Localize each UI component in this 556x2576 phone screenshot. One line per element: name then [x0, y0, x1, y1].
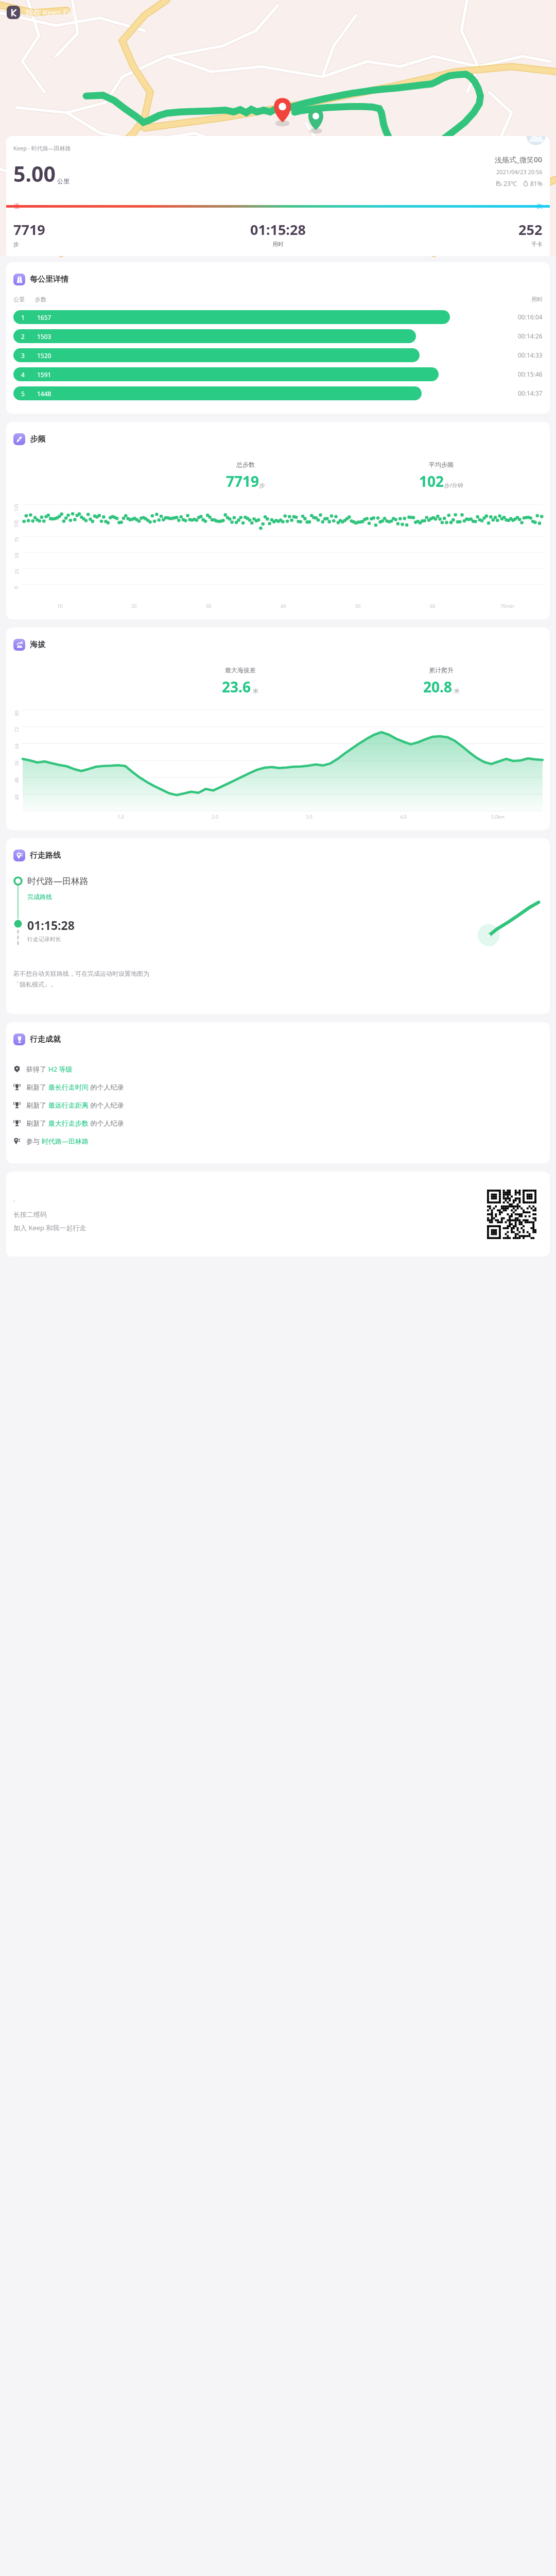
staticText: 用时 — [272, 241, 284, 248]
staticText: 1448 — [37, 389, 51, 398]
staticText: 累计爬升 — [429, 666, 454, 674]
staticText: 23.6 — [222, 677, 251, 697]
staticText: 3 — [21, 351, 25, 360]
staticText: 60 — [430, 603, 436, 609]
staticText: 最大海拔差 — [225, 666, 256, 674]
staticText: 5 — [21, 389, 25, 398]
staticText: 72 — [13, 727, 19, 732]
staticText: 4.0 — [400, 814, 407, 820]
staticText: 1520 — [37, 351, 51, 360]
staticText: 公里 — [57, 177, 69, 185]
staticText: 20 — [131, 603, 137, 609]
staticText: 70min — [500, 603, 514, 609]
staticText: 最远行走距离 — [48, 1101, 89, 1109]
button[interactable]: 步频 — [6, 422, 550, 619]
staticText: 浅殇式_微笑00 — [495, 155, 543, 164]
staticText: 4 — [21, 370, 25, 379]
staticText: 1503 — [37, 332, 51, 341]
staticText: 56 — [13, 760, 19, 766]
other: QR code — [487, 1190, 536, 1239]
staticText: 00:14:37 — [518, 389, 543, 397]
button[interactable]: 行走成就 — [6, 1022, 550, 1163]
staticText: 的个人纪录 — [89, 1082, 124, 1092]
staticText: 01:15:28 — [250, 220, 306, 239]
staticText: 行走记录时长 — [27, 936, 61, 943]
button[interactable]: 刷新了 — [13, 1078, 543, 1096]
button[interactable]: 4 — [13, 366, 543, 382]
staticText: 25 — [13, 569, 19, 574]
button[interactable]: - — [6, 1172, 550, 1257]
staticText: 2 — [21, 332, 25, 341]
staticText: H2 等级 — [48, 1064, 73, 1074]
staticText: 刷新了 — [26, 1100, 48, 1110]
staticText: 获得了 — [26, 1064, 48, 1074]
other: Keep logo — [7, 6, 20, 19]
staticText: 01:15:28 — [27, 917, 75, 933]
staticText: Keep · 时代路—田林路 — [13, 144, 71, 152]
staticText: 75 — [13, 537, 19, 542]
staticText: 刷新了 — [26, 1118, 48, 1128]
staticText: 我在 Keep 行走 — [25, 7, 79, 18]
button[interactable]: Keep logo — [7, 6, 79, 19]
staticText: 的个人纪录 — [89, 1100, 124, 1110]
staticText: 公里 — [13, 296, 25, 303]
button[interactable]: 3 — [13, 347, 543, 363]
staticText: 加入 Keep 和我一起行走 — [13, 1223, 86, 1232]
button[interactable]: 5 — [13, 385, 543, 401]
staticText: 100 — [13, 519, 19, 528]
staticText: 米 — [253, 687, 258, 694]
staticText: 252 — [518, 220, 543, 239]
staticText: 快 — [536, 202, 542, 210]
staticText: 1591 — [37, 370, 51, 379]
staticText: 7719 — [13, 220, 45, 239]
staticText: 行走成就 — [30, 1035, 61, 1044]
staticText: 50 — [355, 603, 361, 609]
staticText: 时代路—田林路 — [42, 1137, 89, 1146]
staticText: 102 — [419, 471, 444, 491]
staticText: 每公里详情 — [30, 275, 68, 284]
staticText: 00:16:04 — [518, 313, 543, 321]
staticText: 5.0km — [491, 814, 505, 820]
staticText: 23℃ — [503, 179, 517, 188]
button[interactable]: 刷新了 — [13, 1096, 543, 1114]
staticText: 00:15:46 — [518, 370, 543, 378]
staticText: 行走路线 — [30, 851, 61, 860]
staticText: 7719 — [226, 471, 259, 491]
staticText: 刷新了 — [26, 1082, 48, 1092]
button[interactable]: 海拔 — [6, 628, 550, 830]
staticText: 48 — [13, 777, 19, 783]
button[interactable]: 每公里详情 — [6, 262, 550, 414]
staticText: 30 — [206, 603, 212, 609]
staticText: 64 — [13, 743, 19, 749]
staticText: 的个人纪录 — [89, 1118, 124, 1128]
button[interactable]: 参与 — [13, 1132, 543, 1150]
staticText: 长按二维码 — [13, 1210, 47, 1218]
staticText: 用时 — [531, 296, 543, 303]
button[interactable]: 获得了 — [13, 1060, 543, 1078]
staticText: 2.0 — [212, 814, 218, 820]
staticText: 0 — [13, 586, 19, 589]
staticText: 10 — [57, 603, 63, 609]
button[interactable]: 刷新了 — [13, 1114, 543, 1132]
staticText: 若不想自动关联路线，可在完成运动时设置地图为 「隐私模式」。 — [13, 970, 149, 988]
staticText: 慢 — [14, 202, 20, 210]
staticText: 20.8 — [423, 677, 452, 697]
staticText: - — [13, 1196, 15, 1204]
button[interactable]: 2 — [13, 328, 543, 344]
staticText: 80 — [13, 710, 19, 716]
staticText: 时代路—田林路 — [27, 875, 89, 887]
button[interactable]: 行走路线 — [6, 838, 550, 1014]
staticText: 00:14:26 — [518, 332, 543, 340]
staticText: 1 — [21, 313, 25, 321]
staticText: 40 — [13, 794, 19, 800]
staticText: 50 — [13, 553, 19, 558]
button[interactable]: Keep · 时代路—田林路 — [6, 136, 550, 256]
staticText: 81% — [530, 179, 543, 188]
staticText: 5.00 — [13, 159, 56, 188]
staticText: 平均步频 — [429, 461, 454, 468]
staticText: 步/分钟 — [444, 481, 464, 489]
button[interactable]: 1 — [13, 309, 543, 325]
staticText: 完成路线 — [27, 893, 52, 901]
staticText: 米 — [454, 687, 460, 694]
other: Route preview — [476, 891, 541, 949]
